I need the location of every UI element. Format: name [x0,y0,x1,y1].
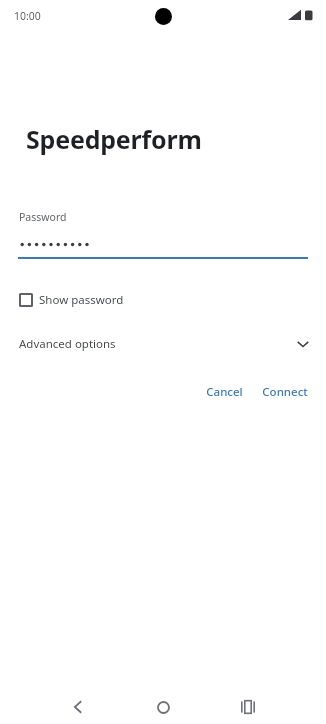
button[interactable]: Back [56,690,100,724]
button[interactable]: Recent apps [226,690,270,724]
button[interactable]: Advanced options [0,332,326,356]
staticText: Advanced options [19,336,116,352]
staticText: Speedperform [26,122,202,156]
staticText: Cancel [206,384,243,400]
button[interactable]: Show password [19,290,124,310]
staticText: Password [19,210,67,224]
button[interactable]: Home [141,690,185,724]
button[interactable]: Cancel [202,380,247,404]
button[interactable] [18,232,308,260]
button[interactable]: Connect [258,380,312,404]
other: Expand advanced options [296,337,310,351]
staticText: Show password [39,292,124,308]
staticText: Connect [262,384,308,400]
staticText: 10:00 [14,9,41,23]
